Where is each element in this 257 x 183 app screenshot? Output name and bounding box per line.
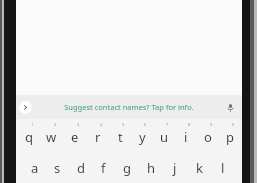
button[interactable]: l [211,151,235,183]
button[interactable]: k [187,151,211,183]
button[interactable]: g [115,151,139,183]
button[interactable]: Voice input [222,99,238,115]
button[interactable]: Suggest contact names? Tap for info. [42,102,216,112]
staticText: 5 [122,122,125,127]
staticText: q [25,128,33,146]
staticText: r [95,128,101,146]
staticText: 3 [77,122,80,127]
staticText: k [196,159,203,177]
staticText: g [123,159,131,177]
staticText: e [71,128,79,146]
staticText: u [160,128,169,146]
staticText: l [221,159,225,177]
staticText: y [139,128,146,146]
button[interactable]: f [92,151,115,183]
staticText: 6 [144,122,147,127]
staticText: a [31,159,39,177]
staticText: f [101,159,106,177]
staticText: o [204,128,212,146]
button[interactable]: 2 [40,119,63,151]
staticText: 8 [188,122,191,127]
staticText: 1 [31,122,34,127]
button[interactable]: 7 [153,119,175,151]
button[interactable]: 6 [131,119,153,151]
button[interactable]: 0 [219,119,241,151]
button[interactable]: h [139,151,163,183]
button[interactable]: 8 [175,119,197,151]
button[interactable]: 1 [17,119,40,151]
button[interactable]: 4 [86,119,109,151]
button[interactable]: Expand suggestions [19,101,32,114]
staticText: d [77,159,85,177]
staticText: p [226,128,234,146]
staticText: t [118,128,123,146]
button[interactable]: s [46,151,69,183]
staticText: h [147,159,156,177]
staticText: 0 [232,122,235,127]
button[interactable]: j [163,151,187,183]
staticText: j [173,159,177,177]
staticText: 4 [100,122,103,127]
staticText: s [54,159,61,177]
button[interactable]: 5 [109,119,131,151]
button[interactable]: d [69,151,92,183]
staticText: i [184,128,188,146]
staticText: w [46,128,57,146]
button[interactable]: 9 [197,119,219,151]
staticText: 7 [166,122,169,127]
staticText: 2 [54,122,57,127]
button[interactable]: a [23,151,46,183]
button[interactable]: 3 [63,119,86,151]
staticText: 9 [210,122,213,127]
